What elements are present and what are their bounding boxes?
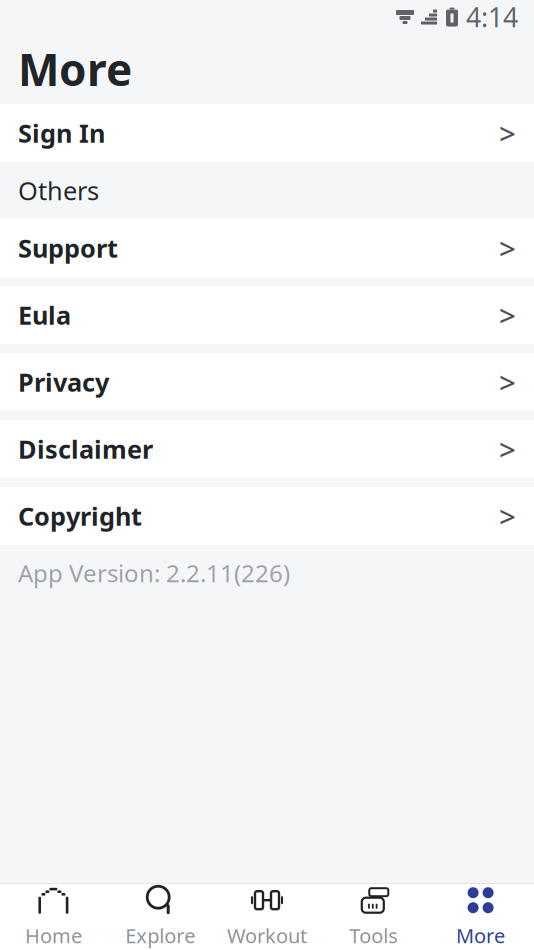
button[interactable]: More [427,884,534,950]
staticText: 4:14 [466,0,518,35]
staticText: Copyright [18,499,142,533]
button[interactable]: Sign In [0,104,534,162]
staticText: > [499,113,516,152]
staticText: Workout [227,922,307,949]
staticText: > [499,362,516,401]
staticText: Disclaimer [18,432,153,466]
staticText: Sign In [18,116,105,150]
button[interactable]: Explore [107,884,214,950]
button[interactable]: Copyright [0,487,534,545]
button[interactable]: Disclaimer [0,420,534,478]
staticText: > [499,295,516,334]
staticText: App Version: 2.2.11(226) [18,557,290,589]
button[interactable]: Privacy [0,353,534,411]
button[interactable]: Workout [214,884,320,950]
staticText: > [499,429,516,468]
staticText: > [499,228,516,267]
staticText: > [499,496,516,535]
staticText: Explore [125,922,195,949]
staticText: Eula [18,298,71,332]
staticText: More [456,922,505,949]
staticText: Home [25,922,82,949]
button[interactable]: Tools [320,884,427,950]
button[interactable]: Support [0,219,534,277]
staticText: Privacy [18,365,109,399]
button[interactable]: Home [0,884,107,950]
staticText: More [18,40,132,98]
button[interactable]: Eula [0,286,534,344]
staticText: Others [18,174,99,207]
staticText: Support [18,231,118,265]
staticText: Tools [349,922,398,949]
